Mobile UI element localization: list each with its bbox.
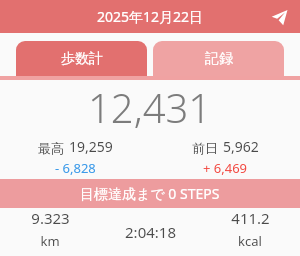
staticText: - 6,828 bbox=[55, 159, 96, 177]
staticText: kcal bbox=[238, 232, 262, 250]
button[interactable]: Send bbox=[266, 4, 292, 30]
staticText: 記録 bbox=[205, 50, 233, 68]
staticText: 19,259 bbox=[69, 137, 113, 156]
staticText: 目標達成まで 0 STEPS bbox=[80, 184, 220, 203]
button[interactable]: 記録 bbox=[153, 41, 284, 76]
staticText: km bbox=[40, 232, 60, 250]
staticText: 12,431 bbox=[88, 80, 212, 134]
staticText: 2025年12月22日 bbox=[97, 7, 204, 26]
staticText: 5,962 bbox=[223, 137, 259, 156]
staticText: 2:04:18 bbox=[125, 222, 176, 242]
staticText: 最高 bbox=[38, 140, 64, 156]
button[interactable]: 歩数計 bbox=[16, 41, 147, 76]
button[interactable]: 目標達成まで 0 STEPS bbox=[0, 179, 300, 208]
staticText: 411.2 bbox=[231, 208, 270, 228]
staticText: 9.323 bbox=[31, 208, 70, 228]
staticText: 歩数計 bbox=[61, 50, 103, 68]
staticText: 前日 bbox=[192, 140, 218, 156]
staticText: + 6,469 bbox=[203, 159, 248, 177]
